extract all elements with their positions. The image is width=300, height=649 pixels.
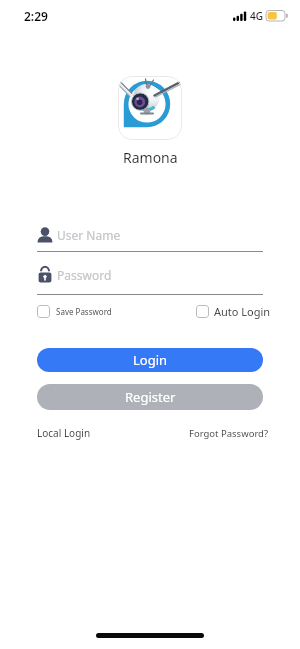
button[interactable]: Login <box>37 348 263 372</box>
staticText: Password <box>57 267 112 283</box>
button[interactable]: Auto Login <box>196 304 271 319</box>
staticText: Local Login <box>37 426 91 440</box>
staticText: Register <box>125 388 176 406</box>
button[interactable]: User Name <box>37 224 263 252</box>
staticText: Login <box>133 351 168 369</box>
staticText: Ramona <box>123 148 178 167</box>
button[interactable]: Local Login <box>37 426 91 440</box>
staticText: Forgot Password? <box>189 427 269 440</box>
staticText: 2:29 <box>24 8 48 24</box>
staticText: Auto Login <box>214 304 271 319</box>
staticText: User Name <box>57 227 121 243</box>
staticText: Save Password <box>56 306 112 317</box>
staticText: 4G <box>250 9 263 23</box>
button[interactable]: Password <box>37 264 263 292</box>
button[interactable]: Save Password <box>37 305 112 318</box>
button[interactable]: Register <box>37 384 263 410</box>
button[interactable]: Forgot Password? <box>189 427 269 440</box>
